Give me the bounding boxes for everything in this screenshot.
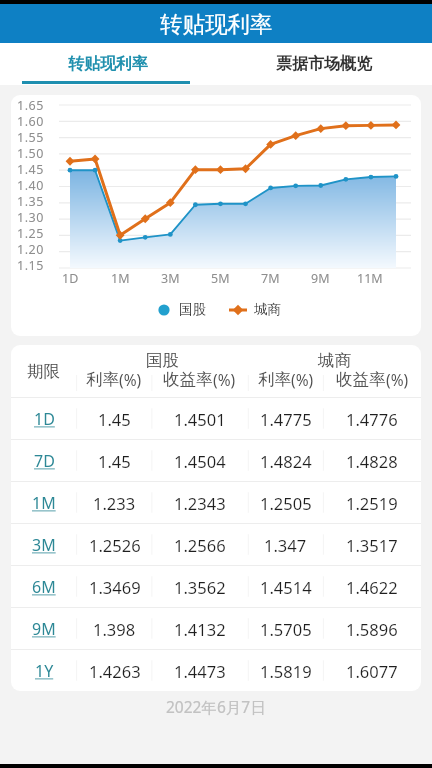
staticText: 1.2566 <box>174 534 226 556</box>
staticText: 1.5819 <box>260 660 312 682</box>
staticText: 1.65 <box>17 97 44 113</box>
staticText: 1.5705 <box>260 618 312 640</box>
staticText: 收益率 <box>336 369 386 390</box>
button[interactable]: 转贴现利率 <box>0 43 216 85</box>
button[interactable]: 1M <box>11 482 421 523</box>
staticText: 1.15 <box>17 257 44 273</box>
staticText: (%) <box>291 369 314 390</box>
staticText: 1.2526 <box>89 534 141 556</box>
staticText: 1D <box>34 408 55 430</box>
staticText: 1.20 <box>17 241 44 257</box>
staticText: 1.55 <box>17 129 44 145</box>
staticText: 1Y <box>35 660 54 682</box>
staticText: 1.50 <box>17 145 44 161</box>
staticText: (%) <box>119 369 142 390</box>
button[interactable]: 6M <box>11 566 421 607</box>
staticText: 城商 <box>254 301 281 318</box>
staticText: 1.4501 <box>174 408 226 430</box>
staticText: 1.4622 <box>346 576 398 598</box>
staticText: (%) <box>213 369 236 390</box>
staticText: 1.45 <box>17 161 44 177</box>
staticText: 国股 <box>146 350 179 371</box>
staticText: 城商 <box>318 350 351 371</box>
staticText: 利率 <box>86 369 119 390</box>
staticText: 1.4828 <box>346 450 398 472</box>
staticText: 1.4263 <box>89 660 141 682</box>
staticText: 1.4473 <box>174 660 226 682</box>
staticText: 1M <box>32 492 56 514</box>
staticText: 1.40 <box>17 177 44 193</box>
button[interactable]: 票据市场概览 <box>216 43 432 85</box>
staticText: 1.4776 <box>346 408 398 430</box>
button[interactable]: 1D <box>11 398 421 439</box>
staticText: 1.4132 <box>174 618 226 640</box>
button[interactable]: 1Y <box>11 650 421 691</box>
staticText: 1.25 <box>17 225 44 241</box>
button[interactable]: 3M <box>11 524 421 565</box>
staticText: 票据市场概览 <box>276 54 372 74</box>
staticText: 1.45 <box>98 408 131 430</box>
staticText: 转贴现利率 <box>160 10 273 38</box>
staticText: 3M <box>32 534 56 556</box>
staticText: 1.5896 <box>346 618 398 640</box>
staticText: 1D <box>62 270 79 287</box>
staticText: 1.398 <box>93 618 136 640</box>
staticText: 1.3469 <box>89 576 141 598</box>
staticText: 1M <box>111 270 130 287</box>
staticText: 6M <box>32 576 56 598</box>
staticText: 1.4824 <box>260 450 312 472</box>
staticText: 1.6077 <box>346 660 398 682</box>
staticText: (%) <box>386 369 409 390</box>
staticText: 1.233 <box>93 492 136 514</box>
button[interactable]: 9M <box>11 608 421 649</box>
staticText: 1.35 <box>17 193 44 209</box>
staticText: 利率 <box>258 369 291 390</box>
staticText: 7M <box>261 270 280 287</box>
staticText: 1.3562 <box>174 576 226 598</box>
staticText: 1.2505 <box>260 492 312 514</box>
staticText: 1.4775 <box>260 408 312 430</box>
staticText: 9M <box>311 270 330 287</box>
staticText: 1.3517 <box>346 534 398 556</box>
staticText: 1.60 <box>17 113 44 129</box>
button[interactable]: 7D <box>11 440 421 481</box>
staticText: 转贴现利率 <box>68 54 148 74</box>
staticText: 收益率 <box>163 369 213 390</box>
staticText: 2022年6月7日 <box>166 696 266 717</box>
staticText: 1.2343 <box>174 492 226 514</box>
staticText: 11M <box>357 270 383 287</box>
staticText: 1.347 <box>264 534 307 556</box>
staticText: 3M <box>161 270 180 287</box>
staticText: 1.4504 <box>174 450 226 472</box>
staticText: 5M <box>211 270 230 287</box>
staticText: 1.4514 <box>260 576 312 598</box>
staticText: 国股 <box>179 301 206 318</box>
staticText: 1.30 <box>17 209 44 225</box>
staticText: 1.2519 <box>346 492 398 514</box>
staticText: 1.45 <box>98 450 131 472</box>
staticText: 7D <box>34 450 55 472</box>
staticText: 9M <box>32 618 56 640</box>
staticText: 期限 <box>27 361 60 382</box>
